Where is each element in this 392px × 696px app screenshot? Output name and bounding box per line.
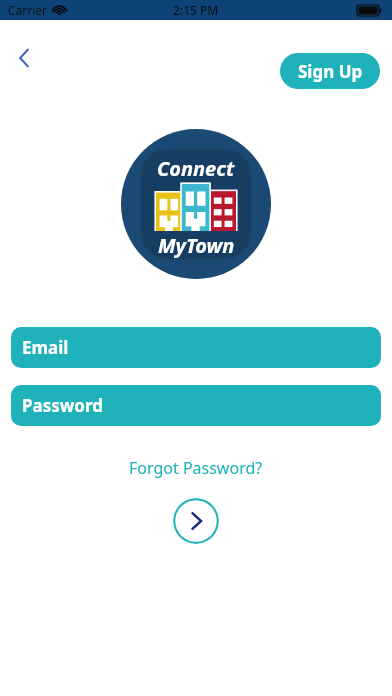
button[interactable]: Email xyxy=(11,327,381,368)
button[interactable]: Forgot Password? xyxy=(123,454,269,482)
staticText: MyTown xyxy=(158,232,235,259)
button[interactable]: Password xyxy=(11,385,381,426)
staticText: Carrier xyxy=(8,2,48,18)
staticText: Forgot Password? xyxy=(129,457,263,479)
staticText: Password xyxy=(22,394,103,417)
staticText: 2:15 PM xyxy=(173,2,219,18)
button[interactable]: Next xyxy=(173,498,219,544)
button[interactable]: Back xyxy=(6,40,42,76)
button[interactable]: Sign Up xyxy=(280,53,380,89)
staticText: Email xyxy=(22,336,69,359)
staticText: Connect xyxy=(157,155,235,182)
button[interactable]: Connect xyxy=(121,129,271,279)
staticText: Sign Up xyxy=(298,60,363,83)
